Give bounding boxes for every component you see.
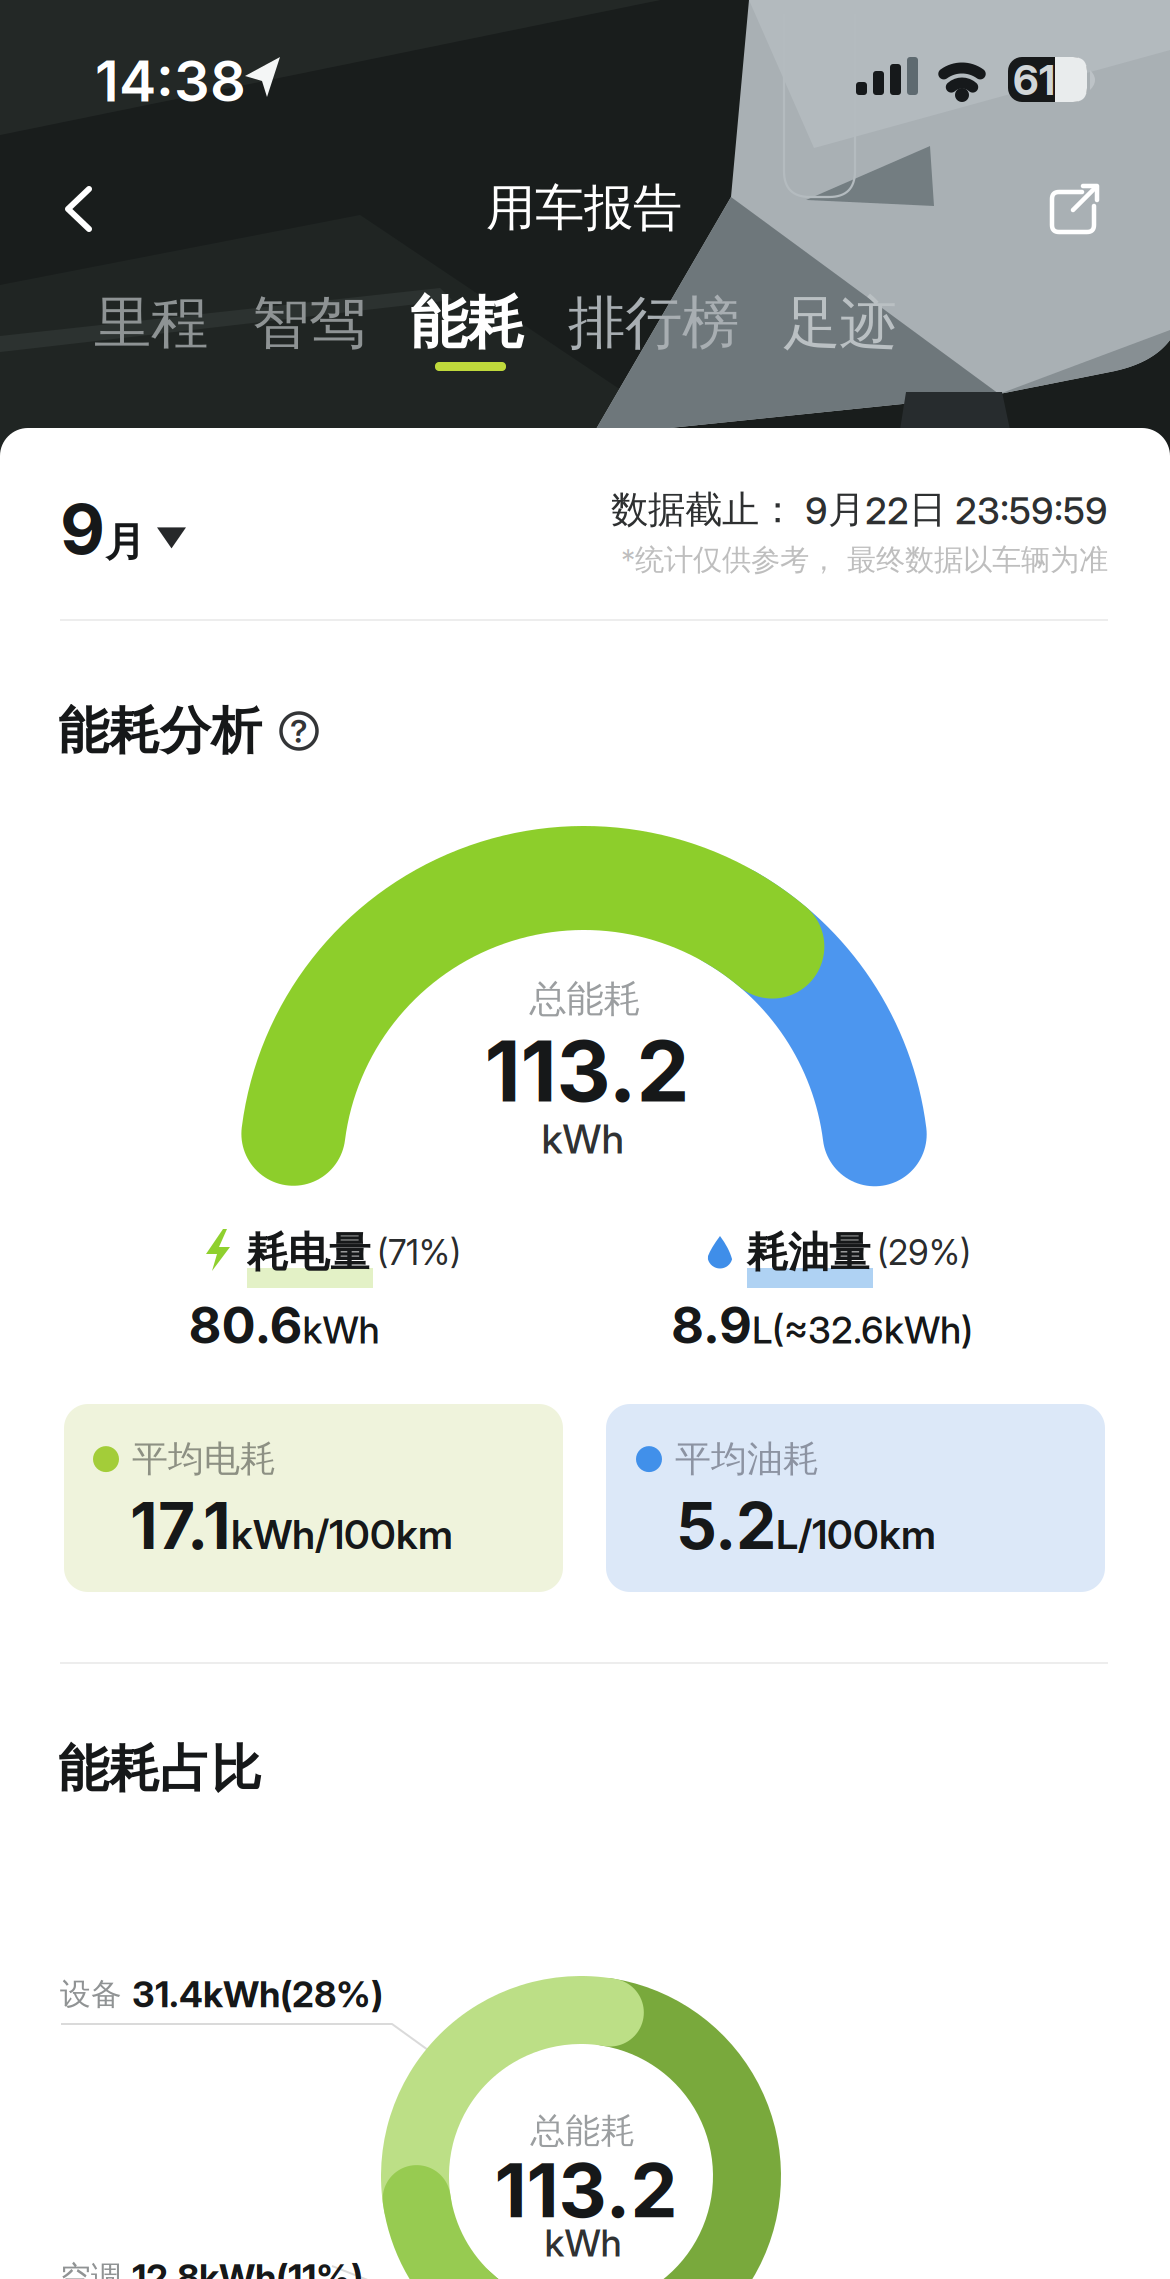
staticText: 耗电量: [247, 1227, 370, 1278]
staticText: kWh: [541, 1115, 624, 1163]
button[interactable]: Back: [62, 184, 96, 234]
staticText: 5.2L/100km: [676, 1488, 936, 1563]
staticText: 足迹: [783, 288, 897, 358]
button[interactable]: 里程: [94, 288, 208, 358]
staticText: *统计仅供参考， 最终数据以车辆为准: [621, 542, 1108, 578]
staticText: ?: [290, 712, 308, 750]
staticText: (71%): [377, 1232, 461, 1273]
staticText: 113.2: [494, 2146, 677, 2234]
button[interactable]: 足迹: [783, 288, 897, 358]
staticText: 能耗分析: [58, 700, 262, 762]
staticText: 能耗: [410, 288, 524, 358]
staticText: 8.9L(≈32.6kWh): [671, 1295, 973, 1355]
staticText: 14:38: [95, 48, 246, 114]
staticText: 80.6kWh: [188, 1295, 379, 1355]
button[interactable]: 9月: [60, 488, 186, 570]
staticText: kWh: [544, 2221, 621, 2265]
button[interactable]: About energy analysis: [279, 711, 319, 751]
staticText: (29%): [877, 1232, 971, 1273]
staticText: 排行榜: [568, 288, 739, 358]
staticText: 113.2: [484, 1021, 689, 1121]
staticText: 智驾: [252, 288, 366, 358]
staticText: 总能耗: [529, 976, 640, 1022]
staticText: 17.1kWh/100km: [130, 1488, 453, 1563]
staticText: 能耗占比: [58, 1738, 262, 1800]
staticText: 设备: [60, 1975, 122, 2013]
staticText: 总能耗: [530, 2110, 635, 2152]
button[interactable]: 智驾: [252, 288, 366, 358]
staticText: 空调: [60, 2258, 122, 2279]
button[interactable]: Share: [1049, 184, 1099, 234]
staticText: 9月: [60, 488, 145, 570]
staticText: 平均油耗: [675, 1437, 819, 1481]
staticText: 平均电耗: [132, 1437, 276, 1481]
staticText: 61: [1013, 56, 1055, 104]
button[interactable]: 排行榜: [568, 288, 739, 358]
staticText: 31.4kWh(28%): [132, 1973, 383, 2015]
button[interactable]: 能耗: [410, 288, 524, 358]
staticText: 12.8kWh(11%): [132, 2256, 363, 2279]
staticText: 用车报告: [486, 178, 682, 238]
staticText: 数据截止： 9月22日 23:59:59: [611, 487, 1108, 533]
staticText: 耗油量: [747, 1227, 870, 1278]
staticText: 里程: [94, 288, 208, 358]
